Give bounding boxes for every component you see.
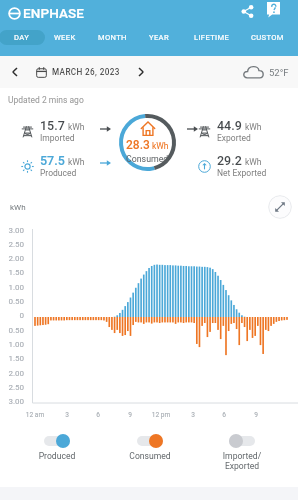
staticText: MONTH <box>98 33 127 42</box>
staticText: Exported <box>217 133 251 143</box>
staticText: 1.00 <box>0 340 24 349</box>
button[interactable]: CUSTOM <box>241 30 293 45</box>
button[interactable]: Expand chart <box>268 195 292 219</box>
staticText: Produced <box>40 168 77 178</box>
staticText: 28.3 <box>126 138 150 152</box>
staticText: 0.50 <box>0 326 24 335</box>
staticText: WEEK <box>54 33 76 42</box>
button[interactable]: 52°F <box>243 56 289 88</box>
staticText: 2.00 <box>0 369 24 378</box>
staticText: 57.5 <box>40 153 65 168</box>
staticText: 9 <box>241 411 271 419</box>
staticText: Imported <box>40 133 75 143</box>
staticText: 0 <box>0 311 24 320</box>
staticText: YEAR <box>149 33 169 42</box>
staticText: 0.50 <box>0 297 24 306</box>
staticText: MARCH 26, 2023 <box>52 67 120 77</box>
staticText: 15.7 <box>40 118 65 133</box>
button[interactable]: Consumed <box>110 434 190 461</box>
staticText: 44.9 <box>217 118 242 133</box>
staticText: Consumed <box>110 451 190 461</box>
staticText: kWh <box>245 157 262 167</box>
staticText: 6 <box>83 411 113 419</box>
button[interactable]: Next day <box>129 60 153 84</box>
button[interactable]: MARCH 26, 2023 <box>36 56 120 88</box>
staticText: 6 <box>209 411 239 419</box>
staticText: CUSTOM <box>251 33 284 42</box>
button[interactable]: LIFETIME <box>185 30 239 45</box>
button[interactable]: WEEK <box>44 30 86 45</box>
staticText: 1.00 <box>0 283 24 292</box>
staticText: 52°F <box>269 67 289 78</box>
staticText: kWh <box>10 203 26 212</box>
staticText: 12 am <box>20 411 50 419</box>
staticText: Consumed <box>126 154 169 164</box>
staticText: 12 pm <box>146 411 176 419</box>
staticText: Updated 2 mins ago <box>8 95 84 105</box>
button[interactable]: YEAR <box>138 30 180 45</box>
staticText: Produced <box>17 451 97 461</box>
button[interactable]: Imported/ Exported <box>202 434 282 471</box>
staticText: 2.50 <box>0 383 24 392</box>
staticText: kWh <box>68 122 85 132</box>
button[interactable]: MONTH <box>88 30 136 45</box>
staticText: 3 <box>52 411 82 419</box>
button[interactable]: Help <box>267 2 287 22</box>
staticText: LIFETIME <box>194 33 230 42</box>
button[interactable]: Produced <box>17 434 97 461</box>
staticText: kWh <box>68 157 85 167</box>
staticText: 1.50 <box>0 268 24 277</box>
staticText: 9 <box>115 411 145 419</box>
staticText: 3 <box>178 411 208 419</box>
staticText: 29.2 <box>217 153 242 168</box>
staticText: 2.00 <box>0 254 24 263</box>
staticText: kWh <box>152 141 169 151</box>
staticText: 2.50 <box>0 240 24 249</box>
staticText: 1.50 <box>0 354 24 363</box>
button[interactable]: Previous day <box>3 60 27 84</box>
staticText: kWh <box>245 122 262 132</box>
staticText: DAY <box>14 33 30 42</box>
button[interactable]: Share <box>237 1 257 21</box>
staticText: Imported/ Exported <box>202 451 282 471</box>
staticText: Net Exported <box>217 168 267 178</box>
staticText: ENPHASE <box>23 5 85 21</box>
button[interactable]: DAY <box>0 30 45 45</box>
staticText: 3.00 <box>0 226 24 235</box>
staticText: 3.00 <box>0 397 24 406</box>
